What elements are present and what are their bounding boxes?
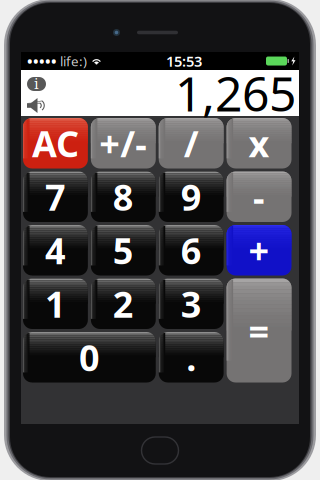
button[interactable]: Info bbox=[27, 77, 46, 91]
staticText: 4 bbox=[45, 226, 66, 274]
staticText: 9 bbox=[181, 173, 202, 221]
button[interactable]: +/- bbox=[91, 118, 156, 168]
staticText: 8 bbox=[113, 173, 134, 221]
button[interactable]: 0 bbox=[23, 332, 156, 382]
button[interactable]: / bbox=[159, 118, 224, 168]
staticText: 6 bbox=[181, 226, 202, 274]
button[interactable]: 3 bbox=[159, 278, 224, 329]
staticText: 1 bbox=[45, 280, 66, 328]
staticText: +/- bbox=[99, 119, 147, 167]
staticText: 3 bbox=[181, 280, 202, 328]
staticText: 2 bbox=[113, 280, 134, 328]
staticText: 1,265 bbox=[175, 61, 296, 125]
staticText: . bbox=[186, 333, 196, 381]
button[interactable]: - bbox=[227, 171, 291, 222]
button[interactable]: 1 bbox=[23, 278, 88, 329]
button[interactable]: 2 bbox=[91, 278, 156, 329]
staticText: i bbox=[34, 75, 39, 93]
staticText: life:) bbox=[57, 52, 87, 70]
staticText: AC bbox=[32, 119, 79, 167]
button[interactable]: = bbox=[227, 278, 291, 382]
staticText: 0 bbox=[79, 333, 100, 381]
button[interactable]: . bbox=[159, 332, 224, 382]
button[interactable]: 9 bbox=[159, 171, 224, 222]
button[interactable]: 8 bbox=[91, 171, 156, 222]
staticText: - bbox=[253, 173, 265, 221]
button[interactable]: 4 bbox=[23, 225, 88, 275]
button[interactable]: 6 bbox=[159, 225, 224, 275]
staticText: ••••• bbox=[27, 51, 57, 71]
staticText: 7 bbox=[45, 173, 66, 221]
staticText: 5 bbox=[113, 226, 134, 274]
staticText: / bbox=[184, 119, 199, 167]
button[interactable]: Sound bbox=[27, 98, 45, 113]
button[interactable]: 7 bbox=[23, 171, 88, 222]
button[interactable]: x bbox=[227, 118, 291, 168]
staticText: 15:53 bbox=[166, 51, 202, 71]
staticText: x bbox=[249, 119, 270, 167]
staticText: + bbox=[249, 226, 270, 274]
button[interactable]: 5 bbox=[91, 225, 156, 275]
button[interactable]: + bbox=[227, 225, 291, 275]
staticText: = bbox=[249, 307, 270, 354]
button[interactable]: AC bbox=[23, 118, 88, 168]
